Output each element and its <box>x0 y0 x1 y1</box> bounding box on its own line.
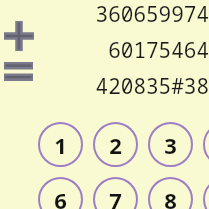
button[interactable]: 2 <box>93 122 138 167</box>
staticText: 6 <box>54 185 67 209</box>
staticText: 2 <box>109 130 122 160</box>
button[interactable]: 9 <box>203 177 209 209</box>
button[interactable]: 3 <box>148 122 193 167</box>
staticText: 60175464 <box>108 37 209 63</box>
staticText: 420835#38 <box>95 73 209 99</box>
button[interactable]: 7 <box>93 177 138 209</box>
staticText: 7 <box>109 185 122 209</box>
button[interactable]: 8 <box>148 177 193 209</box>
button[interactable]: 6 <box>38 177 83 209</box>
staticText: 1 <box>54 130 67 160</box>
staticText: 8 <box>164 185 177 209</box>
button[interactable]: 1 <box>38 122 83 167</box>
button[interactable]: Plus <box>4 21 34 51</box>
button[interactable]: 4 <box>203 122 209 167</box>
staticText: 3 <box>164 130 177 160</box>
button[interactable]: Equals <box>4 62 33 81</box>
staticText: 360659974 <box>95 1 209 27</box>
